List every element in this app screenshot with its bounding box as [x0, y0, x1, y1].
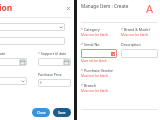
button[interactable] [0, 37, 65, 45]
staticText: Must not be blank [81, 89, 109, 93]
staticText: Must not be blank [81, 59, 107, 63]
staticText: Close [37, 110, 46, 115]
staticText: ion [0, 2, 13, 14]
staticText: Description [121, 42, 141, 47]
staticText: Brand & Model [124, 27, 150, 32]
staticText: Branch [84, 83, 97, 88]
button[interactable]: Open dropdown [0, 77, 27, 85]
button[interactable]: $ [38, 79, 71, 87]
button[interactable]: Field error [81, 49, 117, 58]
staticText: Manage Item : Create [81, 3, 129, 9]
button[interactable]: Open dropdown [59, 25, 63, 29]
button[interactable] [121, 49, 158, 58]
button[interactable]: Pick date [0, 58, 27, 66]
staticText: Purchase Price [38, 72, 62, 77]
staticText: * [81, 27, 83, 32]
button[interactable]: Save [53, 108, 71, 117]
staticText: Must not be blank [81, 74, 109, 78]
button[interactable]: Open dropdown [21, 79, 25, 83]
button[interactable]: Close dialog [66, 6, 71, 11]
staticText: * [81, 83, 83, 88]
other: Field error [111, 52, 115, 56]
staticText: Must not be blank [81, 33, 109, 37]
staticText: Purchase Vendor [84, 68, 114, 73]
staticText: ate [0, 51, 6, 56]
button[interactable]: Pick date [64, 60, 69, 65]
staticText: * [121, 27, 123, 32]
button[interactable]: Pick date [38, 58, 71, 66]
staticText: $ [40, 81, 42, 85]
staticText: Serial No [84, 42, 100, 47]
button[interactable]: Close [32, 108, 50, 117]
button[interactable]: Pick date [20, 60, 25, 65]
staticText: A [146, 1, 154, 16]
staticText: * [81, 42, 83, 47]
staticText: Save [58, 110, 66, 115]
staticText: Category [84, 27, 100, 32]
staticText: Support til date [41, 51, 67, 56]
staticText: * [81, 68, 83, 73]
staticText: Must not be blank [121, 33, 149, 37]
button[interactable]: Open dropdown [0, 23, 65, 31]
staticText: * [38, 51, 40, 56]
